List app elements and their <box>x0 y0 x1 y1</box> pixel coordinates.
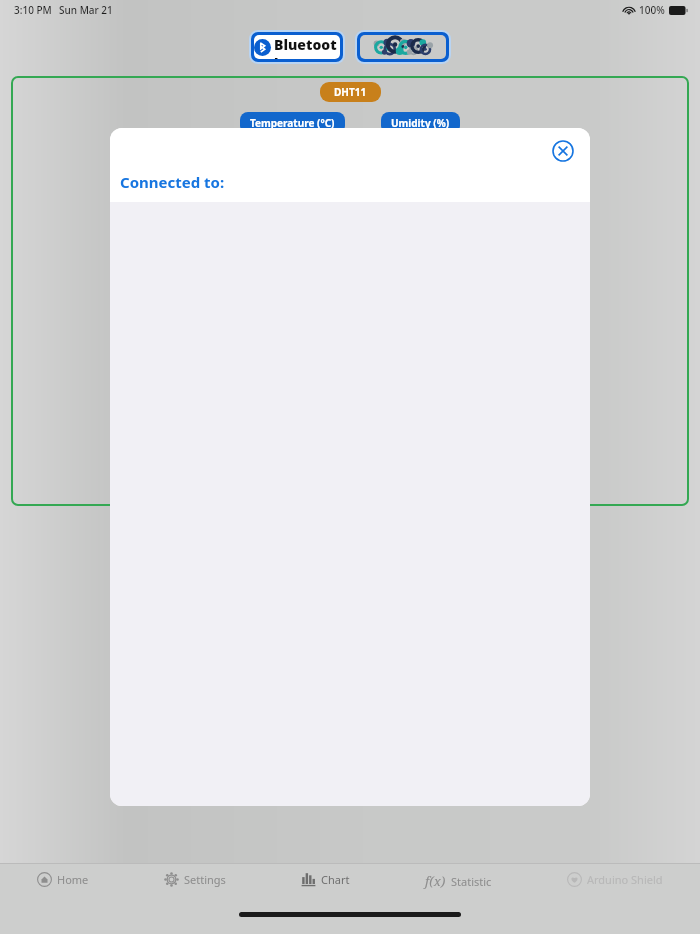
staticText: DHT11 <box>334 85 367 99</box>
button[interactable]: Settings <box>160 870 230 889</box>
button[interactable]: f(x) <box>421 870 496 892</box>
button[interactable]: DHT11 <box>334 85 367 99</box>
button[interactable]: Arduino Shield <box>563 870 667 889</box>
button[interactable]: Bluetooth <box>254 35 340 59</box>
staticText: Arduino Shield <box>587 872 663 887</box>
button[interactable]: Close <box>548 136 578 166</box>
staticText: 3:10 PM <box>14 3 52 17</box>
staticText: Umidity (%) <box>391 116 450 130</box>
staticText: Connected to: <box>120 172 225 192</box>
staticText: 100% <box>639 3 665 17</box>
staticText: Settings <box>184 872 226 887</box>
staticText: Sun Mar 21 <box>59 3 113 17</box>
staticText: Home <box>57 872 89 887</box>
button[interactable]: Temperature (°C) <box>250 116 335 130</box>
staticText: f(x) <box>425 872 446 890</box>
button[interactable]: Umidity (%) <box>391 116 450 130</box>
button[interactable]: Home <box>33 870 93 889</box>
staticText: Chart <box>321 872 350 887</box>
button[interactable]: Scan for devices <box>360 35 446 59</box>
staticText: Temperature (°C) <box>250 116 335 130</box>
button[interactable]: Chart <box>297 870 354 889</box>
staticText: Statistic <box>451 874 492 889</box>
staticText: Bluetooth <box>274 35 340 59</box>
